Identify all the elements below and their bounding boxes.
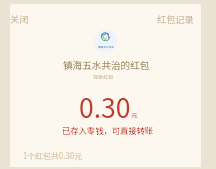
staticText: 红包记录 <box>157 12 194 25</box>
staticText: 已存入零钱，可直接转账 <box>62 124 154 136</box>
staticText: 元 <box>131 110 138 119</box>
button[interactable]: 关闭 <box>4 8 35 29</box>
button[interactable]: 1个红包共0.30元 <box>17 146 89 165</box>
staticText: 镇海五水共治 <box>98 45 114 49</box>
button[interactable]: 红包记录 <box>151 8 200 29</box>
staticText: 关闭 <box>10 12 29 25</box>
staticText: 现金红包 <box>93 73 114 80</box>
staticText: 镇海五水共治的红包 <box>63 58 150 72</box>
staticText: 1个红包共0.30元 <box>23 150 83 161</box>
staticText: 0.30 <box>79 87 131 125</box>
